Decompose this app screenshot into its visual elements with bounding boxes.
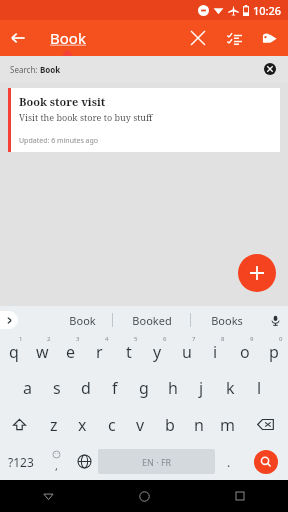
button[interactable]: g — [129, 370, 158, 406]
staticText: 1 — [19, 335, 23, 343]
staticText: e — [66, 341, 76, 363]
button[interactable]: y — [143, 334, 172, 370]
staticText: l — [257, 377, 262, 399]
button[interactable]: Clear — [180, 20, 216, 56]
button[interactable]: o — [230, 334, 259, 370]
button[interactable]: Home — [96, 480, 192, 512]
staticText: w — [36, 341, 49, 363]
staticText: t — [126, 341, 132, 363]
button[interactable]: Back — [0, 20, 36, 56]
button[interactable]: . — [215, 443, 243, 480]
button[interactable]: s — [42, 370, 71, 406]
staticText: n — [194, 414, 204, 436]
staticText: 8 — [221, 335, 225, 343]
staticText: c — [108, 414, 116, 436]
staticText: v — [136, 414, 145, 436]
button[interactable]: Voice input — [262, 306, 288, 334]
button[interactable]: r — [85, 334, 114, 370]
button[interactable]: x — [68, 406, 97, 443]
staticText: Book — [50, 28, 86, 48]
button[interactable]: e — [56, 334, 85, 370]
staticText: 3 — [76, 335, 80, 343]
staticText: b — [165, 414, 175, 436]
button[interactable]: v — [126, 406, 155, 443]
staticText: 0 — [279, 335, 283, 343]
button[interactable]: ?123 — [0, 443, 42, 480]
staticText: ?123 — [8, 454, 34, 470]
staticText: Books — [211, 313, 243, 328]
staticText: j — [199, 377, 204, 399]
button[interactable]: k — [216, 370, 245, 406]
button[interactable]: w — [28, 334, 56, 370]
button[interactable]: Book store visit — [8, 88, 280, 152]
staticText: 7 — [192, 335, 196, 343]
staticText: u — [182, 341, 192, 363]
button[interactable]: i — [201, 334, 230, 370]
button[interactable]: Labels — [252, 20, 288, 56]
staticText: EN · FR — [142, 456, 172, 468]
staticText: k — [226, 377, 235, 399]
staticText: d — [81, 377, 91, 399]
staticText: , — [55, 458, 58, 473]
button[interactable]: h — [158, 370, 187, 406]
button[interactable]: Emoji and comma — [42, 443, 70, 480]
button[interactable]: Back — [0, 480, 96, 512]
staticText: 5 — [134, 335, 138, 343]
button[interactable]: Book — [53, 306, 112, 334]
staticText: a — [23, 377, 32, 399]
button[interactable]: Recents — [192, 480, 288, 512]
button[interactable]: EN · FR — [98, 449, 215, 474]
button[interactable]: d — [71, 370, 100, 406]
staticText: Visit the book store to buy stuff — [19, 111, 153, 123]
button[interactable]: f — [100, 370, 129, 406]
staticText: Booked — [132, 313, 172, 328]
button[interactable]: Close search — [260, 59, 280, 79]
staticText: 6 — [163, 335, 167, 343]
staticText: g — [139, 377, 149, 399]
button[interactable]: Shift — [0, 406, 39, 443]
staticText: q — [9, 341, 19, 363]
staticText: m — [220, 414, 235, 436]
staticText: Book store visit — [19, 94, 106, 109]
staticText: 4 — [105, 335, 109, 343]
button[interactable]: m — [213, 406, 242, 443]
button[interactable]: Checklist — [216, 20, 252, 56]
button[interactable]: l — [245, 370, 274, 406]
staticText: 2 — [47, 335, 51, 343]
button[interactable]: More suggestions — [0, 311, 18, 329]
button[interactable]: Backspace — [242, 406, 288, 443]
staticText: z — [50, 414, 58, 436]
staticText: s — [53, 377, 61, 399]
button[interactable]: p — [259, 334, 288, 370]
button[interactable]: a — [13, 370, 42, 406]
staticText: f — [112, 377, 118, 399]
button[interactable]: Books — [191, 306, 262, 334]
button[interactable]: z — [39, 406, 68, 443]
staticText: r — [96, 341, 103, 363]
staticText: 10:26 — [253, 3, 282, 18]
staticText: Book — [69, 313, 96, 328]
button[interactable]: Add note — [238, 254, 276, 292]
button[interactable]: c — [97, 406, 126, 443]
button[interactable]: Booked — [113, 306, 190, 334]
staticText: h — [168, 377, 178, 399]
button[interactable]: b — [155, 406, 184, 443]
staticText: o — [240, 341, 250, 363]
staticText: p — [269, 341, 279, 363]
button[interactable]: u — [172, 334, 201, 370]
button[interactable]: Change language — [70, 443, 98, 480]
button[interactable]: t — [114, 334, 143, 370]
button[interactable]: n — [184, 406, 213, 443]
button[interactable]: Search — [254, 450, 278, 474]
staticText: y — [153, 341, 162, 363]
staticText: . — [227, 454, 231, 470]
staticText: x — [78, 414, 87, 436]
staticText: Book — [40, 64, 61, 75]
button[interactable]: q — [0, 334, 28, 370]
staticText: 9 — [250, 335, 254, 343]
staticText: i — [213, 341, 218, 363]
button[interactable]: j — [187, 370, 216, 406]
staticText: Updated: 6 minutes ago — [19, 136, 99, 146]
staticText: Search: — [10, 64, 40, 75]
